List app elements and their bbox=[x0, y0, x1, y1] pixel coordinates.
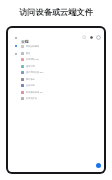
button[interactable]: 最近 bbox=[21, 50, 95, 56]
staticText: 会议记录 bbox=[26, 84, 35, 87]
staticText: 我的云端硬盘 bbox=[26, 45, 40, 48]
button[interactable]: Account bbox=[96, 35, 101, 40]
staticText: 照片备份 bbox=[26, 78, 35, 81]
button[interactable]: Settings bbox=[13, 51, 19, 57]
button[interactable]: 项目计划 bbox=[21, 63, 95, 69]
staticText: 设计规范文档.doc bbox=[26, 71, 44, 74]
button[interactable]: 设计规范文档.doc bbox=[21, 69, 95, 75]
staticText: 年度报告.pdf bbox=[26, 58, 39, 61]
button[interactable]: Recent bbox=[13, 35, 19, 41]
button[interactable]: 财务数据表格.xls bbox=[21, 89, 95, 95]
staticText: 共享文件夹 bbox=[26, 97, 37, 100]
staticText: 财务数据表格.xls bbox=[26, 91, 43, 94]
button[interactable]: 共享文件夹 bbox=[21, 95, 95, 101]
button[interactable]: 年度报告.pdf bbox=[21, 56, 95, 62]
button[interactable]: Add bbox=[96, 163, 101, 168]
staticText: 访问设备或云端文件 bbox=[0, 7, 112, 17]
button[interactable]: 会议记录 bbox=[21, 82, 95, 88]
button[interactable]: Cloud bbox=[13, 43, 19, 49]
button[interactable]: 照片备份 bbox=[21, 76, 95, 82]
staticText: 最近 bbox=[26, 52, 31, 55]
button[interactable]: Search bbox=[82, 35, 87, 40]
staticText: 项目计划 bbox=[26, 65, 35, 68]
button[interactable]: Grid view bbox=[89, 35, 94, 40]
button[interactable]: 我的云端硬盘 bbox=[21, 43, 95, 49]
staticText: 云端 bbox=[21, 39, 29, 44]
